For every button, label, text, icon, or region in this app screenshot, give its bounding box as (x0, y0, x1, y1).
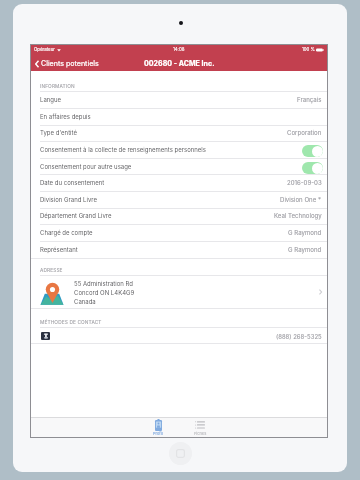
staticText: Français (297, 96, 322, 103)
staticText: (888) 268-5325 (276, 333, 322, 340)
staticText: 100 % (302, 47, 315, 52)
staticText: Opérateur (34, 47, 55, 52)
staticText: 002680 - ACME Inc. (144, 59, 215, 68)
button[interactable]: Consentement pour autre usage (31, 159, 327, 176)
button[interactable]: Département Grand Livre (31, 208, 327, 225)
button[interactable]: Consentement à la collecte de renseignem… (31, 142, 327, 159)
other: Back (35, 60, 39, 68)
staticText: ADRESSE (40, 267, 63, 273)
staticText: MÉTHODES DE CONTACT (40, 319, 102, 325)
staticText: Consentement pour autre usage (40, 163, 132, 170)
button[interactable]: Profil (137, 418, 179, 437)
staticText: En affaires depuis (40, 113, 91, 120)
staticText: Division Grand Livre (40, 196, 97, 203)
staticText: Canada (74, 298, 96, 305)
staticText: Concord ON L4K4G9 (74, 289, 135, 296)
staticText: Consentement à la collecte de renseignem… (40, 146, 206, 153)
staticText: Date du consentement (40, 179, 105, 186)
button[interactable]: En affaires depuis (31, 109, 327, 126)
staticText: Fiches (194, 431, 207, 436)
staticText: Keal Technology (274, 212, 322, 219)
button[interactable]: Représentant (31, 242, 327, 259)
button[interactable]: Date du consentement (31, 175, 327, 192)
button[interactable]: Fiches (179, 418, 221, 437)
staticText: Langue (40, 96, 62, 103)
staticText: Département Grand Livre (40, 212, 112, 219)
other: Phone (41, 332, 50, 340)
staticText: Profil (153, 431, 163, 436)
button[interactable]: Division Grand Livre (31, 192, 327, 209)
staticText: Division One * (280, 196, 322, 203)
staticText: Corporation (287, 129, 322, 136)
staticText: G Raymond (288, 229, 322, 236)
staticText: 55 Administration Rd (74, 280, 133, 287)
staticText: G Raymond (288, 246, 322, 253)
button[interactable]: Langue (31, 92, 327, 109)
staticText: Clients potentiels (41, 59, 99, 68)
staticText: INFORMATION (40, 83, 75, 89)
staticText: Chargé de compte (40, 229, 93, 236)
button[interactable]: Type d'entité (31, 125, 327, 142)
staticText: 14:08 (173, 47, 185, 52)
button[interactable]: Phone (31, 328, 327, 344)
button[interactable]: Chargé de compte (31, 225, 327, 242)
staticText: Représentant (40, 246, 78, 253)
button[interactable]: 55 Administration Rd (31, 276, 327, 308)
staticText: 2016-09-03 (287, 179, 322, 186)
button[interactable]: Back (35, 59, 99, 68)
staticText: Type d'entité (40, 129, 77, 136)
